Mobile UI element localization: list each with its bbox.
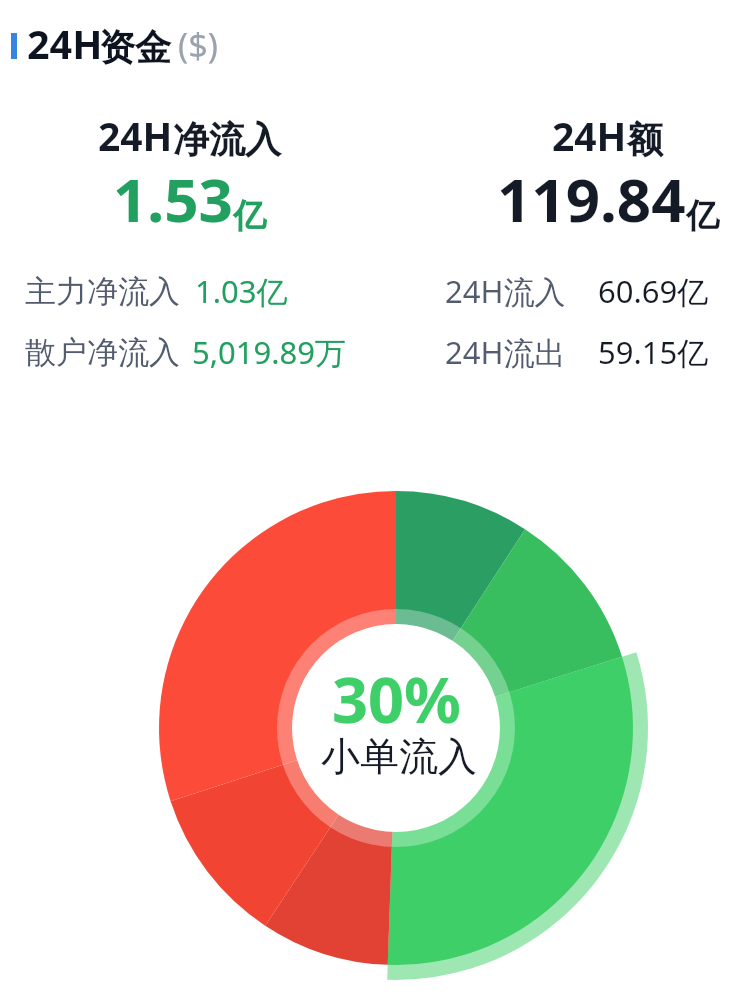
staticText: 散户净流入 xyxy=(25,333,180,372)
staticText: 119.84 xyxy=(497,158,686,240)
staticText: 净流入 xyxy=(173,117,281,162)
staticText: 1.03亿 xyxy=(195,270,288,312)
staticText: 额 xyxy=(627,117,663,162)
staticText: 30% xyxy=(332,656,461,742)
staticText: 24H xyxy=(552,109,627,162)
staticText: ($) xyxy=(178,22,218,68)
staticText: 亿 xyxy=(686,195,719,237)
staticText: 24H流入 xyxy=(445,270,566,312)
staticText: 24H xyxy=(27,17,103,71)
staticText: 59.15亿 xyxy=(598,331,709,373)
button[interactable]: 24H流入 xyxy=(445,270,709,312)
staticText: 1.53 xyxy=(113,158,233,240)
staticText: 24H xyxy=(98,109,173,162)
staticText: 资金 xyxy=(99,25,171,70)
button[interactable]: 散户净流入 xyxy=(25,331,347,373)
button[interactable]: 24H xyxy=(0,14,260,78)
staticText: 24H流出 xyxy=(445,331,566,373)
staticText: 小单流入 xyxy=(321,732,477,781)
staticText: 主力净流入 xyxy=(25,272,180,311)
button[interactable]: 24H 资金流向占比环形图 xyxy=(144,476,648,980)
button[interactable]: 24H流出 xyxy=(445,331,709,373)
staticText: 5,019.89万 xyxy=(192,331,347,373)
staticText: 亿 xyxy=(233,195,266,237)
staticText: 60.69亿 xyxy=(598,270,709,312)
button[interactable]: 主力净流入 xyxy=(25,270,288,312)
